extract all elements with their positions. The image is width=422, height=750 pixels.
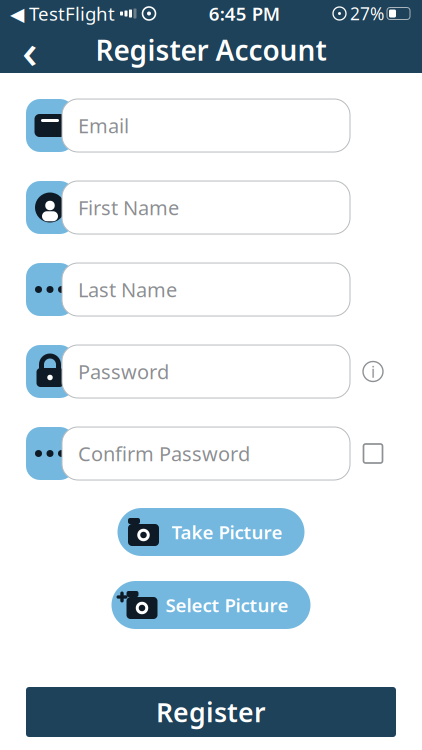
staticText: ‹ [22,18,38,82]
button[interactable]: Show password [350,427,396,480]
staticText: Register [156,694,266,730]
staticText: Select Picture [165,593,288,617]
staticText: 27% [350,2,384,25]
staticText: Last Name [78,276,177,303]
staticText: Confirm Password [78,440,250,467]
staticText: Register Account [95,31,326,69]
staticText: ◀ TestFlight [10,1,115,26]
staticText: 6:45 PM [209,1,280,26]
button[interactable]: Password requirements [350,345,396,398]
staticText: First Name [78,194,179,221]
staticText: i [371,361,375,382]
button[interactable]: Take Picture [117,508,304,556]
staticText: Password [78,358,169,385]
staticText: Email [78,112,129,139]
staticText: Take Picture [171,520,282,544]
button[interactable]: Register [26,687,396,737]
button[interactable]: Select Picture [111,581,310,629]
button[interactable]: Back [6,27,54,73]
